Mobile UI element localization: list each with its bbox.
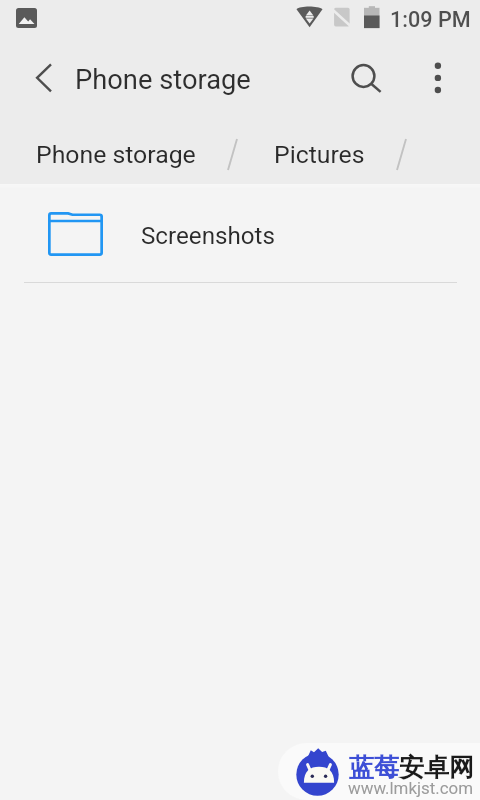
button[interactable]: More options [414,52,462,100]
button[interactable]: Back [22,52,70,100]
staticText: www.lmkjst.com [348,778,474,798]
staticText: 安卓网 [399,752,474,783]
button[interactable]: Screenshots [0,189,480,283]
staticText: 蓝莓 [349,752,399,783]
button[interactable]: Search [340,52,388,100]
staticText: Phone storage [75,64,251,96]
staticText: Screenshots [141,222,275,250]
button[interactable]: Pictures [274,140,365,169]
staticText: 1:09 PM [390,7,471,32]
button[interactable]: Phone storage [36,140,196,169]
